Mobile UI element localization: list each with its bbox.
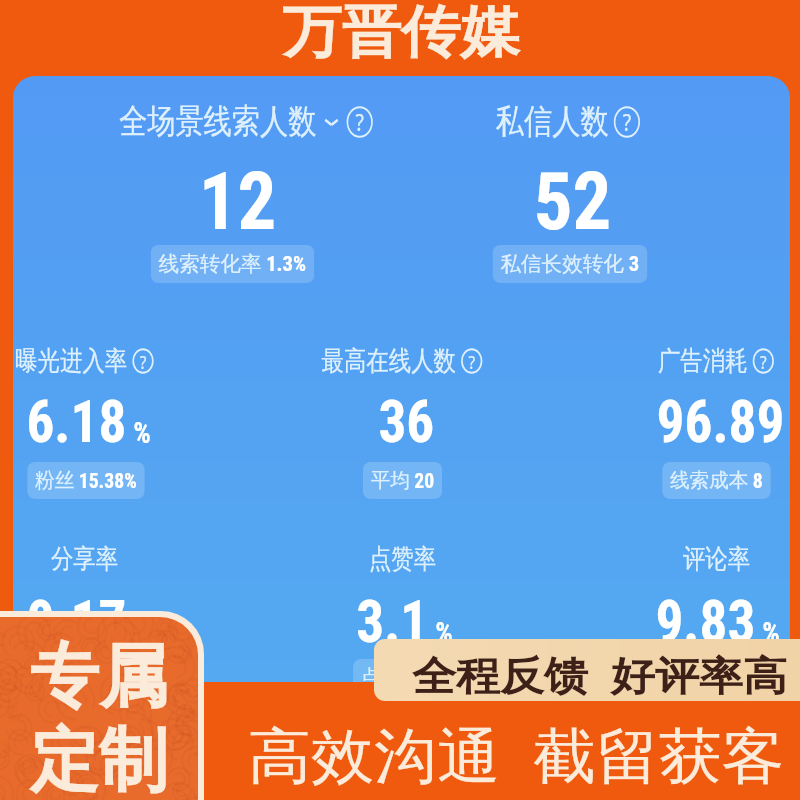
staticText: 3 [624,252,640,277]
staticText: 6.18 [26,386,127,456]
staticText: 52 [534,155,611,249]
other: Help [346,106,373,138]
other: Help [614,106,640,138]
staticText: 平均 [371,468,410,493]
staticText: 31 [420,666,444,682]
staticText: 1.3% [261,252,306,277]
staticText: 8 [748,469,763,492]
staticText: 96.89 [657,386,784,456]
staticText: ? [140,349,147,374]
staticText: 3.1 [356,586,429,656]
staticText: 定制 [30,718,168,800]
staticText: 36 [378,386,434,456]
staticText: 12 [199,155,276,249]
staticText: 高效沟通 截留获客 [248,713,786,795]
staticText: 分享数 [45,665,104,682]
button[interactable]: 全程反馈 好评率高 [374,639,800,701]
staticText: 私信人数 [496,100,609,143]
staticText: % [435,615,454,650]
staticText: 私信长效转化 [500,251,624,277]
staticText: 点赞数 [361,665,420,682]
staticText: 分享率 [51,542,118,576]
staticText: 线索转化率 [158,251,261,277]
staticText: 最高在线人数 [321,344,456,378]
staticText: 粉丝 [35,468,74,493]
staticText: % [133,615,152,650]
other: Help [461,348,482,374]
staticText: ? [356,106,365,138]
staticText: 评论数 [675,665,734,682]
button[interactable] [0,617,198,800]
staticText: 9.83 [655,586,756,656]
staticText: ? [468,349,476,374]
staticText: 98 [734,666,758,682]
other: Help [752,348,774,374]
staticText: 20 [410,469,434,492]
staticText: 广告消耗 [658,344,747,378]
staticText: 12 [104,666,128,682]
staticText: 线索成本 [670,468,748,493]
staticText: 专属 [30,634,168,721]
other: Help [132,348,154,374]
staticText: % [762,615,781,650]
staticText: % [133,415,152,450]
staticText: 曝光进入率 [15,344,127,378]
staticText: 0.17 [26,586,127,656]
staticText: 点赞率 [369,542,436,576]
staticText: 评论率 [683,542,750,576]
staticText: 全场景线索人数 [119,100,316,143]
staticText: 15.38% [74,469,137,492]
staticText: ? [623,106,632,138]
staticText: ? [760,349,767,374]
staticText: 全程反馈 好评率高 [412,647,787,701]
other: Expand [324,113,339,131]
staticText: 万晋传媒 [282,0,520,68]
